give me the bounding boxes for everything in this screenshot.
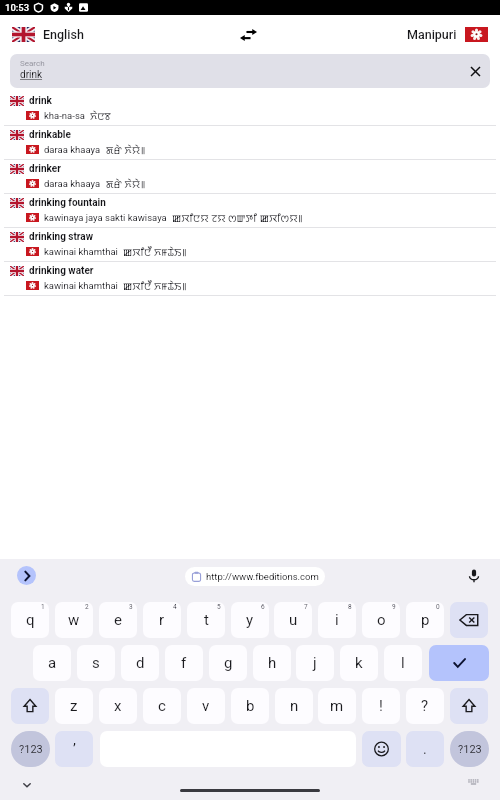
button[interactable]: b xyxy=(231,688,269,724)
button[interactable]: More suggestions xyxy=(17,566,36,585)
button[interactable]: l xyxy=(384,645,422,681)
staticText: daraa khaaya xyxy=(44,144,101,155)
button[interactable]: j xyxy=(296,645,334,681)
staticText: f xyxy=(181,654,187,672)
staticText: a xyxy=(48,654,57,672)
button[interactable]: g xyxy=(209,645,247,681)
button[interactable]: y xyxy=(231,602,269,638)
staticText: c xyxy=(158,697,166,715)
button[interactable]: s xyxy=(77,645,115,681)
staticText: p xyxy=(421,611,430,629)
button[interactable]: f xyxy=(165,645,203,681)
staticText: ?123 xyxy=(19,743,43,756)
staticText: t xyxy=(204,611,209,629)
staticText: 10:53 xyxy=(5,2,30,13)
button[interactable]: . xyxy=(406,731,444,767)
staticText: drinking fountain xyxy=(29,197,106,209)
staticText: l xyxy=(401,654,405,672)
staticText: kawinai khamthai xyxy=(44,280,118,291)
button[interactable]: e xyxy=(99,602,137,638)
staticText: w xyxy=(68,611,80,629)
button[interactable]: Enter xyxy=(429,645,489,681)
button[interactable]: Swap languages xyxy=(231,18,265,52)
staticText: English xyxy=(43,27,84,42)
button[interactable]: ? xyxy=(406,688,444,724)
button[interactable]: drinker xyxy=(0,160,500,194)
staticText: z xyxy=(70,697,78,715)
staticText: ꯀꯋꯤꯅꯌ ꯖꯌ ꯁꯛꯇꯤ ꯀꯋꯤꯁꯌ꯫ xyxy=(172,211,303,223)
staticText: 9 xyxy=(392,603,396,611)
staticText: e xyxy=(114,611,122,629)
button[interactable]: drinking fountain xyxy=(0,194,500,228)
staticText: 6 xyxy=(261,603,265,611)
staticText: Manipuri xyxy=(407,27,457,42)
button[interactable]: Shift xyxy=(11,688,49,724)
staticText: 3 xyxy=(129,603,133,611)
staticText: o xyxy=(377,611,386,629)
staticText: 8 xyxy=(348,603,352,611)
staticText: 1 xyxy=(41,603,45,611)
button[interactable]: ?123 xyxy=(450,731,489,767)
button[interactable]: m xyxy=(318,688,356,724)
staticText: http://www.fbeditions.com xyxy=(206,571,319,582)
button[interactable]: a xyxy=(33,645,71,681)
button[interactable]: drinking water xyxy=(0,262,500,296)
staticText: 0 xyxy=(436,603,440,611)
staticText: kawinai khamthai xyxy=(44,246,118,257)
button[interactable]: Search xyxy=(10,54,490,88)
button[interactable]: z xyxy=(55,688,93,724)
staticText: drinker xyxy=(29,163,61,175)
button[interactable]: v xyxy=(187,688,225,724)
button[interactable]: Switch keyboard xyxy=(461,770,485,794)
staticText: v xyxy=(202,697,210,715)
button[interactable]: i xyxy=(318,602,356,638)
button[interactable]: u xyxy=(274,602,312,638)
button[interactable]: h xyxy=(253,645,291,681)
button[interactable]: http://www.fbeditions.com xyxy=(191,567,319,586)
staticText: ꯗꯔꯥ ꯈꯥꯌꯥ꯫ xyxy=(106,143,145,155)
button[interactable]: x xyxy=(99,688,137,724)
button[interactable]: English xyxy=(12,27,84,42)
staticText: n xyxy=(290,697,299,715)
staticText: 4 xyxy=(173,603,177,611)
staticText: daraa khaaya xyxy=(44,178,101,189)
staticText: ꯗꯔꯥ ꯈꯥꯌꯥ꯫ xyxy=(106,177,145,189)
button[interactable]: p xyxy=(406,602,444,638)
button[interactable]: r xyxy=(143,602,181,638)
staticText: h xyxy=(268,654,277,672)
button[interactable]: o xyxy=(362,602,400,638)
button[interactable]: ’ xyxy=(55,731,93,767)
button[interactable]: n xyxy=(275,688,313,724)
staticText: . xyxy=(423,741,427,757)
button[interactable]: w xyxy=(55,602,93,638)
button[interactable]: Emoji xyxy=(362,731,401,767)
button[interactable]: Manipuri xyxy=(407,27,488,42)
button[interactable]: Voice input xyxy=(461,563,486,588)
button[interactable]: drink xyxy=(0,92,500,126)
button[interactable]: drinking straw xyxy=(0,228,500,262)
button[interactable]: d xyxy=(121,645,159,681)
button[interactable]: drinkable xyxy=(0,126,500,160)
button[interactable]: ! xyxy=(362,688,400,724)
button[interactable]: k xyxy=(340,645,378,681)
button[interactable]: Backspace xyxy=(450,602,488,638)
staticText: 7 xyxy=(304,603,308,611)
staticText: drinking straw xyxy=(29,231,94,243)
button[interactable]: Close keyboard xyxy=(15,773,39,797)
button[interactable]: ?123 xyxy=(11,731,50,767)
staticText: 5 xyxy=(217,603,221,611)
button[interactable]: c xyxy=(143,688,181,724)
button[interactable]: Clear search xyxy=(463,59,487,83)
staticText: ꯀꯋꯤꯅꯩ ꯈꯝꯊꯥꯏ꯫ xyxy=(123,279,187,291)
button[interactable]: Shift xyxy=(450,688,488,724)
button[interactable]: t xyxy=(187,602,225,638)
staticText: s xyxy=(92,654,100,672)
staticText: ’ xyxy=(73,741,76,757)
staticText: x xyxy=(114,697,122,715)
staticText: drinkable xyxy=(29,129,71,141)
button[interactable]: q xyxy=(11,602,49,638)
staticText: ? xyxy=(421,697,429,715)
staticText: kawinaya jaya sakti kawisaya xyxy=(44,212,167,223)
staticText: drinking water xyxy=(29,265,94,277)
